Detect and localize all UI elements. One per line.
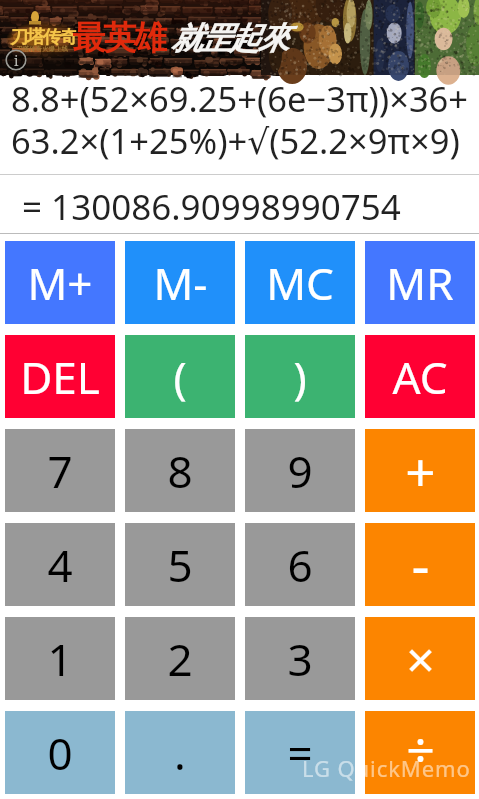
button[interactable]: AC [365,335,475,418]
button[interactable]: 4 [5,523,115,606]
staticText: 8.8+(52×69.25+(6e−3π))×36+ 63.2×(1+25%)+… [11,75,469,164]
staticText: 刀塔传奇 [11,26,77,49]
staticText: ) [293,347,307,407]
button[interactable]: . [125,711,235,794]
staticText: + [405,435,436,507]
button[interactable]: 7 [5,429,115,512]
button[interactable]: ) [245,335,355,418]
button[interactable]: Advertisement banner [0,0,479,75]
staticText: 3 [287,629,313,689]
staticText: 8 [167,441,193,501]
button[interactable]: × [365,617,475,700]
staticText: M- [153,253,208,313]
staticText: 5 [167,535,193,595]
staticText: DEL [20,347,100,407]
staticText: M+ [27,253,93,313]
staticText: ( [173,347,187,407]
staticText: 刀塔传奇火爆上线 [16,45,68,53]
button[interactable]: 0 [5,711,115,794]
button[interactable]: DEL [5,335,115,418]
staticText: 0 [47,723,73,783]
button[interactable]: Ad information [5,49,27,71]
button[interactable]: 9 [245,429,355,512]
staticText: 1 [47,629,73,689]
button[interactable]: 3 [245,617,355,700]
staticText: - [411,526,430,602]
staticText: 6 [287,535,313,595]
staticText: i [14,51,19,70]
staticText: × [406,625,435,693]
button[interactable]: ÷ [365,711,475,794]
button[interactable]: + [365,429,475,512]
button[interactable]: MC [245,241,355,324]
staticText: 9 [287,441,313,501]
staticText: 就罡起來 [172,19,288,58]
button[interactable]: 6 [245,523,355,606]
staticText: = [287,723,313,783]
staticText: 2 [167,629,193,689]
staticText: 7 [47,441,73,501]
staticText: MC [266,253,334,313]
button[interactable]: 2 [125,617,235,700]
button[interactable]: - [365,523,475,606]
staticText: 4 [47,535,73,595]
button[interactable]: = [245,711,355,794]
button[interactable]: 1 [5,617,115,700]
staticText: ÷ [406,715,435,783]
staticText: MR [386,253,454,313]
button[interactable]: MR [365,241,475,324]
button[interactable]: M- [125,241,235,324]
button[interactable]: M+ [5,241,115,324]
button[interactable]: ( [125,335,235,418]
staticText: LG QuickMemo [302,753,471,783]
staticText: = 130086.90998990754 [22,183,401,231]
button[interactable]: 5 [125,523,235,606]
staticText: . [174,723,186,783]
staticText: AC [392,347,448,407]
button[interactable]: 8 [125,429,235,512]
staticText: 最英雄 [73,17,166,59]
